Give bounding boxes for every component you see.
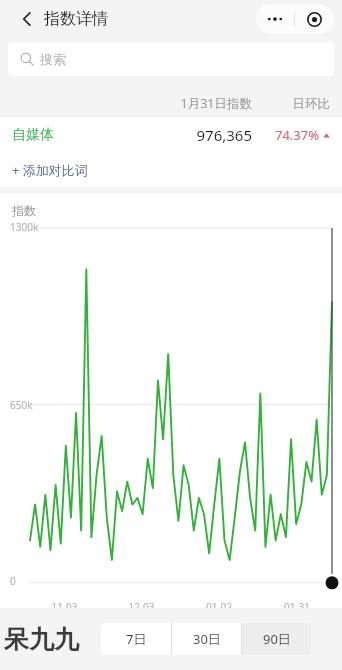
staticText: 01-31 [258, 600, 336, 614]
staticText: 01-02 [180, 600, 258, 614]
staticText: 指数 [12, 203, 36, 218]
button[interactable]: 7日 [101, 623, 171, 655]
staticText: + 添加对比词 [12, 161, 88, 179]
staticText: 0 [10, 574, 16, 588]
staticText: 11-03 [26, 600, 103, 614]
staticText: 650k [10, 398, 33, 412]
staticText: 90日 [263, 630, 291, 648]
button[interactable]: 自媒体 [0, 117, 342, 153]
staticText: 12-03 [103, 600, 180, 614]
staticText: 7日 [126, 630, 147, 648]
button[interactable]: Target [295, 4, 334, 34]
staticText: 1月31日指数 [142, 95, 252, 112]
button[interactable]: 30日 [172, 623, 241, 655]
staticText: 自媒体 [12, 126, 54, 144]
button[interactable]: 搜索 [8, 42, 334, 76]
button[interactable]: 90日 [242, 623, 311, 655]
staticText: 呆九九 [4, 624, 79, 655]
staticText: 指数详情 [44, 9, 108, 29]
staticText: 搜索 [40, 51, 66, 67]
button[interactable]: More [256, 4, 294, 34]
button[interactable]: Back [10, 2, 44, 36]
staticText: 日环比 [252, 96, 330, 112]
staticText: 30日 [193, 630, 221, 648]
staticText: 1300k [10, 220, 39, 234]
staticText: 74.37% [275, 126, 320, 144]
button[interactable]: + 添加对比词 [0, 153, 342, 187]
staticText: 976,365 [142, 125, 252, 145]
